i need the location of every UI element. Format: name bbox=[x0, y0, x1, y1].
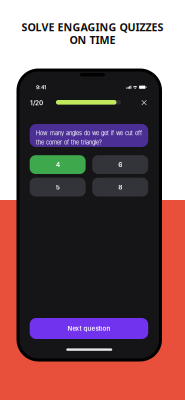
staticText: 4 bbox=[56, 161, 60, 169]
staticText: 8 bbox=[118, 183, 122, 191]
staticText: the corner of the triangle? bbox=[36, 139, 102, 146]
staticText: SOLVE ENGAGING QUIZZES bbox=[21, 20, 163, 34]
button[interactable]: Next question bbox=[30, 318, 148, 339]
staticText: 1/20 bbox=[30, 99, 43, 107]
button[interactable]: 8 bbox=[92, 178, 148, 196]
staticText: 5 bbox=[56, 183, 60, 191]
button[interactable]: 4 bbox=[30, 155, 86, 174]
button[interactable]: 6 bbox=[92, 155, 148, 174]
button[interactable]: Close quiz bbox=[140, 98, 149, 107]
staticText: ON TIME bbox=[69, 33, 115, 47]
staticText: How many angles do we get if we cut off bbox=[36, 130, 142, 137]
button[interactable]: 5 bbox=[30, 178, 86, 196]
staticText: Next question bbox=[67, 325, 110, 332]
staticText: 6 bbox=[118, 161, 122, 169]
staticText: 9:41 bbox=[36, 84, 46, 90]
